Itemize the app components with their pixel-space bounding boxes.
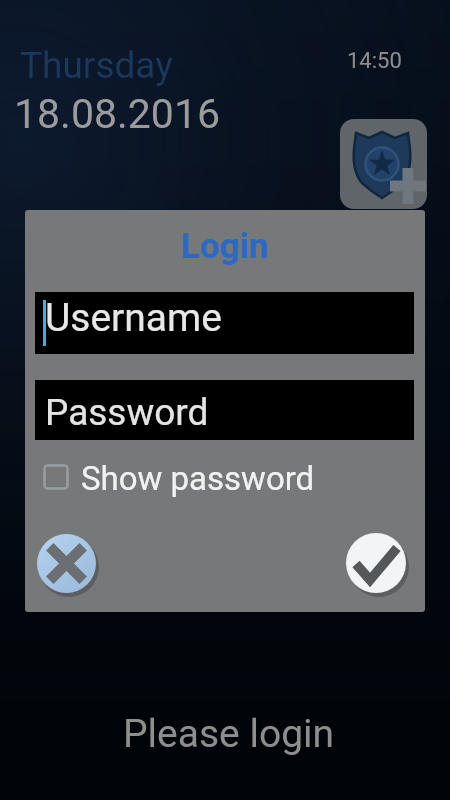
- button[interactable]: Password: [35, 380, 414, 440]
- button[interactable]: [340, 119, 427, 209]
- button[interactable]: Username: [35, 292, 414, 354]
- staticText: Login: [181, 226, 269, 267]
- button[interactable]: Show password: [43, 459, 353, 503]
- staticText: Username: [45, 295, 222, 341]
- staticText: Please login: [123, 711, 335, 757]
- button[interactable]: [343, 527, 415, 599]
- staticText: Password: [45, 391, 209, 434]
- staticText: 18.08.2016: [14, 90, 220, 138]
- button[interactable]: [29, 527, 101, 599]
- staticText: Show password: [81, 459, 315, 498]
- staticText: 14:50: [347, 48, 402, 74]
- staticText: Thursday: [20, 44, 173, 87]
